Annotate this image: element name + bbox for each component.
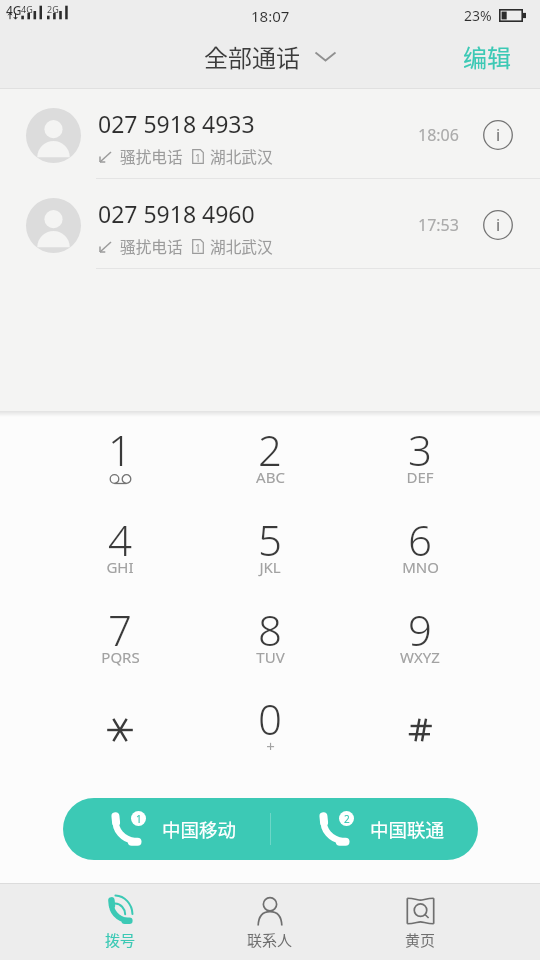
button[interactable] [345, 692, 495, 781]
button[interactable]: 8 [195, 603, 345, 692]
staticText: WXYZ [400, 647, 440, 667]
button[interactable]: 4 [45, 513, 195, 602]
staticText: 027 5918 4960 [98, 198, 255, 229]
staticText: i [496, 124, 501, 146]
button[interactable]: 027 5918 4960 [0, 179, 540, 269]
staticText: 骚扰电话 [120, 235, 183, 258]
button[interactable]: 1 [45, 423, 195, 512]
button[interactable]: 黄页 [345, 884, 495, 960]
button[interactable]: 联系人 [195, 884, 345, 960]
staticText: 17:53 [418, 214, 459, 236]
staticText: i [496, 214, 501, 236]
button[interactable]: 027 5918 4933 [0, 89, 540, 179]
staticText: 1 [136, 812, 142, 826]
staticText: 1 [108, 421, 132, 478]
staticText: 8 [258, 601, 282, 658]
staticText: 4 [108, 511, 132, 568]
staticText: 9 [408, 601, 432, 658]
button[interactable]: 3 [345, 423, 495, 512]
staticText: PQRS [101, 647, 140, 667]
staticText: 18:06 [418, 124, 459, 146]
button[interactable]: 0 [195, 692, 345, 781]
staticText: 0 [258, 690, 282, 747]
staticText: 1 [195, 151, 201, 165]
staticText: 联系人 [247, 929, 293, 951]
staticText: + [266, 736, 275, 756]
staticText: 1 [195, 241, 201, 255]
staticText: 23% [464, 6, 492, 25]
button[interactable]: 2 [271, 798, 478, 860]
staticText: 2 [258, 421, 282, 478]
staticText: TUV [256, 647, 285, 667]
staticText: MNO [402, 557, 439, 577]
staticText: 4G [21, 3, 33, 15]
staticText: ABC [256, 467, 285, 487]
staticText: 7 [108, 601, 132, 658]
staticText: 中国联通 [370, 816, 445, 843]
staticText: 2 [344, 812, 350, 826]
staticText: 拨号 [105, 929, 136, 951]
button[interactable]: 5 [195, 513, 345, 602]
button[interactable]: 6 [345, 513, 495, 602]
staticText: 湖北武汉 [210, 145, 273, 168]
staticText: JKL [259, 557, 281, 577]
staticText: 湖北武汉 [210, 235, 273, 258]
staticText: 全部通话 [204, 39, 300, 74]
staticText: 黄页 [405, 929, 436, 951]
staticText: 6 [408, 511, 432, 568]
button[interactable]: Call details [483, 120, 513, 150]
staticText: GHI [106, 557, 134, 577]
button[interactable]: 2 [195, 423, 345, 512]
button[interactable]: Call details [483, 210, 513, 240]
staticText: 18:07 [251, 6, 290, 26]
staticText: 2G [47, 3, 59, 15]
button[interactable]: 9 [345, 603, 495, 692]
staticText: 骚扰电话 [120, 145, 183, 168]
staticText: DEF [406, 467, 434, 487]
button[interactable]: 1 [63, 798, 270, 860]
staticText: 中国移动 [162, 816, 237, 843]
button[interactable]: 拨号 [45, 884, 195, 960]
staticText: 3 [408, 421, 432, 478]
button[interactable]: 全部通话 [204, 39, 336, 74]
button[interactable] [45, 692, 195, 781]
staticText: 4G [6, 2, 22, 18]
staticText: 5 [258, 511, 282, 568]
staticText: 027 5918 4933 [98, 108, 255, 139]
button[interactable]: 编辑 [463, 39, 540, 74]
button[interactable]: 7 [45, 603, 195, 692]
